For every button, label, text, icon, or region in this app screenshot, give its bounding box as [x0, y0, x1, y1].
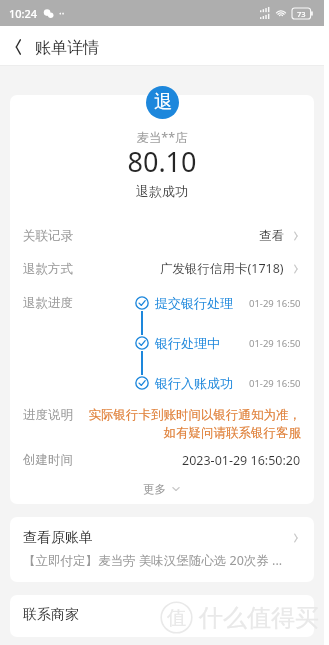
button[interactable]: 银行入账成功 [135, 375, 301, 391]
staticText: 实际银行卡到账时间以银行通知为准， 如有疑问请联系银行客服 [88, 407, 301, 441]
button[interactable]: 查看原账单 [10, 517, 314, 582]
staticText: 01-29 16:50 [249, 337, 301, 350]
staticText: 退款成功 [23, 183, 301, 199]
button[interactable]: 更多 [23, 479, 301, 499]
staticText: 80.10 [23, 143, 301, 180]
staticText: 退 [154, 91, 172, 114]
button[interactable]: 关联记录 [23, 219, 301, 252]
staticText: 退款进度 [23, 295, 73, 311]
staticText: 银行入账成功 [155, 375, 233, 391]
staticText: 查看 [259, 228, 284, 244]
staticText: 广发银行信用卡(1718) [160, 260, 284, 277]
staticText: 进度说明 [23, 407, 73, 423]
staticText: 银行处理中 [155, 335, 220, 351]
staticText: 查看原账单 [23, 529, 93, 547]
staticText: 【立即付定】麦当劳 美味汉堡随心选 20次券 ... [23, 552, 283, 569]
button[interactable]: Back [0, 26, 35, 66]
staticText: 10:24 [9, 6, 38, 21]
staticText: 提交银行处理 [155, 295, 233, 311]
button[interactable]: 联系商家 [10, 595, 314, 637]
staticText: 2023-01-29 16:50:20 [182, 452, 301, 469]
staticText: 01-29 16:50 [249, 377, 301, 390]
staticText: 联系商家 [23, 606, 79, 624]
staticText: 账单详情 [35, 38, 99, 58]
staticText: 值 [167, 606, 186, 630]
staticText: 关联记录 [23, 228, 73, 244]
staticText: 麦当**店 [23, 129, 301, 146]
staticText: 什么值得买 [199, 603, 319, 633]
button[interactable]: 银行处理中 [135, 335, 301, 351]
staticText: 01-29 16:50 [249, 297, 301, 310]
button[interactable]: 退款方式 [23, 252, 301, 285]
staticText: 更多 [143, 482, 166, 496]
staticText: 73 [297, 9, 306, 19]
staticText: ·· [59, 6, 65, 20]
button[interactable]: 提交银行处理 [135, 295, 301, 311]
staticText: 退款方式 [23, 261, 73, 277]
staticText: 创建时间 [23, 452, 73, 468]
